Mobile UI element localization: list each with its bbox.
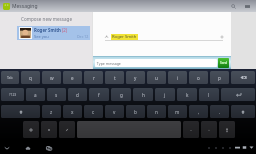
staticText: r: [93, 75, 95, 81]
button[interactable]: o: [189, 71, 208, 84]
staticText: d: [76, 92, 79, 98]
button[interactable]: Search: [228, 1, 238, 11]
button[interactable]: More options: [242, 1, 252, 11]
button[interactable]: n: [147, 105, 166, 118]
staticText: s: [55, 92, 58, 98]
button[interactable]: s: [47, 88, 66, 101]
staticText: x: [71, 109, 74, 115]
button[interactable]: [1, 105, 40, 118]
staticText: m: [175, 109, 180, 115]
button[interactable]: w: [42, 71, 61, 84]
button[interactable]: Hide keyboard: [1, 142, 12, 153]
button[interactable]: Send: [218, 58, 229, 68]
button[interactable]: [201, 121, 217, 138]
staticText: e: [71, 75, 74, 81]
button[interactable]: l: [199, 88, 219, 101]
button[interactable]: b: [126, 105, 145, 118]
staticText: Messaging: [12, 3, 38, 10]
button[interactable]: [231, 105, 255, 118]
staticText: o: [197, 75, 200, 81]
staticText: Compose new message: [21, 16, 72, 22]
staticText: z: [50, 109, 53, 115]
button[interactable]: [231, 71, 255, 84]
button[interactable]: Compose new message: [19, 15, 74, 23]
button[interactable]: Recent apps: [43, 142, 54, 153]
staticText: (2): [62, 27, 68, 33]
staticText: g: [120, 92, 123, 98]
staticText: n: [155, 109, 158, 115]
button[interactable]: m: [168, 105, 187, 118]
button[interactable]: v: [105, 105, 124, 118]
button[interactable]: [41, 121, 57, 138]
staticText: b: [134, 109, 137, 115]
button[interactable]: d: [68, 88, 87, 101]
staticText: c: [92, 109, 95, 115]
button[interactable]: z: [42, 105, 61, 118]
staticText: u: [155, 75, 158, 81]
button[interactable]: Roger Smith: [17, 26, 90, 40]
button[interactable]: y: [126, 71, 145, 84]
staticText: Dec 12: [77, 34, 89, 39]
button[interactable]: c: [84, 105, 103, 118]
staticText: j: [164, 92, 166, 98]
staticText: Roger Smith: [112, 34, 137, 40]
button[interactable]: h: [133, 88, 153, 101]
button[interactable]: .: [210, 105, 229, 118]
staticText: w: [50, 75, 54, 81]
staticText: y: [134, 75, 137, 81]
staticText: ?123: [9, 92, 17, 97]
button[interactable]: q: [21, 71, 40, 84]
button[interactable]: k: [177, 88, 197, 101]
staticText: .: [219, 109, 221, 115]
button[interactable]: g: [111, 88, 131, 101]
staticText: f: [98, 92, 100, 98]
staticText: Type message: [95, 61, 121, 66]
staticText: Tab: [7, 75, 13, 80]
button[interactable]: i: [168, 71, 187, 84]
button[interactable]: [219, 121, 235, 138]
button[interactable]: r: [84, 71, 103, 84]
staticText: v: [113, 109, 116, 115]
staticText: p: [218, 75, 221, 81]
button[interactable]: Home: [22, 142, 33, 153]
staticText: ,: [198, 109, 200, 115]
staticText: q: [29, 75, 32, 81]
button[interactable]: ?123: [1, 88, 24, 101]
staticText: i: [177, 75, 179, 81]
staticText: k: [186, 92, 189, 98]
button[interactable]: f: [89, 88, 109, 101]
button[interactable]: [59, 121, 75, 138]
button[interactable]: e: [63, 71, 82, 84]
staticText: a: [34, 92, 37, 98]
staticText: Send: [220, 61, 228, 65]
staticText: l: [208, 92, 210, 98]
staticText: h: [142, 92, 145, 98]
button[interactable]: Tab: [1, 71, 19, 84]
button[interactable]: [183, 121, 199, 138]
button[interactable]: a: [26, 88, 45, 101]
button[interactable]: Type message: [95, 59, 217, 67]
button[interactable]: [221, 88, 255, 101]
button[interactable]: [23, 121, 39, 138]
button[interactable]: p: [210, 71, 229, 84]
button[interactable]: Add recipient: [219, 34, 225, 40]
button[interactable]: t: [105, 71, 124, 84]
button[interactable]: j: [155, 88, 175, 101]
button[interactable]: x: [63, 105, 82, 118]
staticText: See you: [34, 34, 49, 39]
button[interactable]: u: [147, 71, 166, 84]
staticText: t: [114, 75, 116, 81]
button[interactable]: ,: [189, 105, 208, 118]
staticText: Roger Smith: [34, 27, 61, 33]
